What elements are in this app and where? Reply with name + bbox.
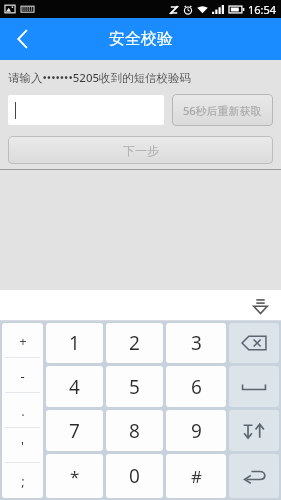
button[interactable]: Hide keyboard <box>247 293 273 319</box>
button[interactable]: # <box>166 454 226 498</box>
button[interactable]: 2 <box>106 323 163 363</box>
staticText: 4 <box>69 374 80 400</box>
button[interactable]: 9 <box>166 410 226 451</box>
staticText: 8 <box>129 418 140 444</box>
button[interactable]: 3 <box>166 323 226 363</box>
staticText: 9 <box>191 418 202 444</box>
button[interactable]: - <box>2 358 43 393</box>
button[interactable]: Next field <box>229 410 279 451</box>
staticText: # <box>191 465 202 488</box>
staticText: 1 <box>69 330 80 356</box>
button[interactable]: 6 <box>166 366 226 407</box>
button[interactable]: Backspace <box>229 323 279 363</box>
button[interactable]: 7 <box>46 410 103 451</box>
button[interactable]: + <box>2 323 43 358</box>
staticText: 请输入•••••••5205收到的短信校验码 <box>8 70 192 86</box>
staticText: 7 <box>69 418 80 444</box>
button[interactable]: . <box>2 393 43 428</box>
button[interactable]: 下一步 <box>8 136 273 164</box>
staticText: 5 <box>129 374 140 400</box>
button[interactable]: 验证码输入框 <box>8 95 164 125</box>
staticText: . <box>21 402 25 420</box>
button[interactable]: Enter <box>229 454 279 498</box>
button[interactable]: 0 <box>106 454 163 498</box>
staticText: 安全校验 <box>109 29 173 49</box>
staticText: 16:54 <box>248 2 277 17</box>
staticText: ; <box>21 472 25 490</box>
staticText: 3 <box>191 330 202 356</box>
staticText: 56秒后重新获取 <box>183 103 262 118</box>
button[interactable]: 4 <box>46 366 103 407</box>
button[interactable]: 5 <box>106 366 163 407</box>
button[interactable]: Space <box>229 366 279 407</box>
staticText: 6 <box>191 374 202 400</box>
button[interactable]: 1 <box>46 323 103 363</box>
button[interactable]: 8 <box>106 410 163 451</box>
staticText: 下一步 <box>123 143 159 158</box>
button[interactable]: * <box>46 454 103 498</box>
button[interactable]: Back <box>0 18 44 60</box>
button[interactable]: ' <box>2 428 43 463</box>
staticText: - <box>20 367 25 385</box>
button[interactable]: ; <box>2 463 43 498</box>
staticText: ' <box>21 437 24 455</box>
staticText: + <box>19 332 27 350</box>
staticText: 2 <box>129 330 140 356</box>
button[interactable]: 56秒后重新获取 <box>172 94 273 126</box>
staticText: 0 <box>129 463 140 489</box>
staticText: * <box>70 465 80 488</box>
